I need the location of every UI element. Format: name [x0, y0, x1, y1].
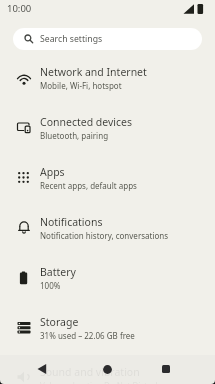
button[interactable]: Notifications — [0, 203, 215, 253]
button[interactable]: Battery — [0, 253, 215, 303]
button[interactable]: Apps — [0, 153, 215, 203]
staticText: 31% used – 22.06 GB free — [40, 330, 135, 341]
button[interactable]: Connected devices — [0, 103, 215, 153]
staticText: Storage — [40, 315, 79, 329]
staticText: Connected devices — [40, 115, 133, 129]
staticText: Notifications — [40, 215, 103, 229]
staticText: Search settings — [40, 33, 103, 45]
staticText: Recent apps, default apps — [40, 180, 137, 191]
button[interactable] — [156, 359, 176, 379]
staticText: Bluetooth, pairing — [40, 130, 109, 141]
staticText: 10:00 — [7, 2, 32, 15]
staticText: Apps — [40, 165, 65, 179]
staticText: Mobile, Wi-Fi, hotspot — [40, 80, 122, 91]
button[interactable]: Search settings — [13, 28, 202, 50]
staticText: 100% — [40, 280, 61, 291]
button[interactable]: Storage — [0, 303, 215, 353]
button[interactable]: Network and Internet — [0, 53, 215, 103]
staticText: Battery — [40, 265, 76, 279]
button[interactable] — [32, 359, 52, 379]
staticText: Network and Internet — [40, 65, 147, 79]
button[interactable]: Sound and vibration — [0, 353, 215, 384]
staticText: Notification history, conversations — [40, 230, 169, 241]
staticText: Sound and vibration — [40, 365, 140, 379]
button[interactable] — [97, 359, 117, 379]
